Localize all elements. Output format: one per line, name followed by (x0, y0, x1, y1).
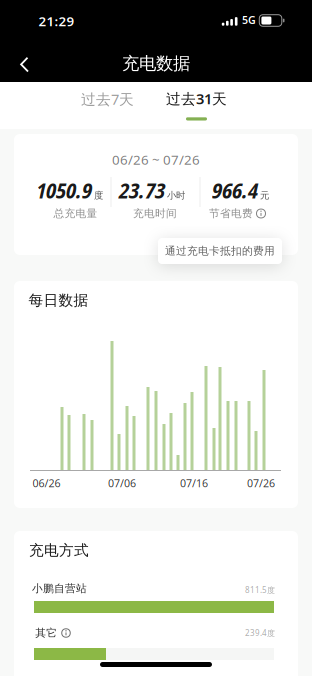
staticText: 06/26 (32, 476, 60, 490)
staticText: 811.5度 (245, 585, 275, 595)
staticText: 充电方式 (29, 541, 89, 559)
staticText: 21:29 (38, 12, 74, 30)
staticText: 总充电量 (53, 207, 97, 220)
staticText: 小时 (167, 190, 185, 201)
staticText: 23.73 (119, 175, 165, 205)
staticText: 充电时间 (133, 207, 177, 220)
staticText: 07/06 (108, 476, 136, 490)
staticText: 239.4度 (245, 628, 275, 638)
button[interactable] (256, 208, 266, 218)
staticText: 充电数据 (122, 53, 190, 74)
staticText: 过去31天 (166, 89, 227, 108)
staticText: 其它 (35, 626, 57, 639)
staticText: 过去7天 (81, 89, 134, 109)
staticText: 通过充电卡抵扣的费用 (165, 244, 275, 257)
button[interactable] (13, 54, 37, 76)
staticText: 小鹏自营站 (32, 582, 87, 595)
staticText: 度 (94, 190, 103, 201)
staticText: 5G (242, 13, 256, 27)
staticText: 07/16 (180, 476, 208, 490)
button[interactable]: 过去7天 (63, 79, 151, 119)
staticText: 06/26 ~ 07/26 (112, 151, 200, 168)
button[interactable]: 过去31天 (152, 85, 240, 111)
staticText: 1050.9 (36, 175, 92, 205)
staticText: 元 (260, 190, 269, 201)
staticText: 节省电费 (209, 207, 253, 220)
staticText: 每日数据 (28, 291, 88, 309)
staticText: 07/26 (247, 476, 275, 490)
staticText: 966.4 (212, 175, 258, 205)
button[interactable] (61, 628, 71, 638)
